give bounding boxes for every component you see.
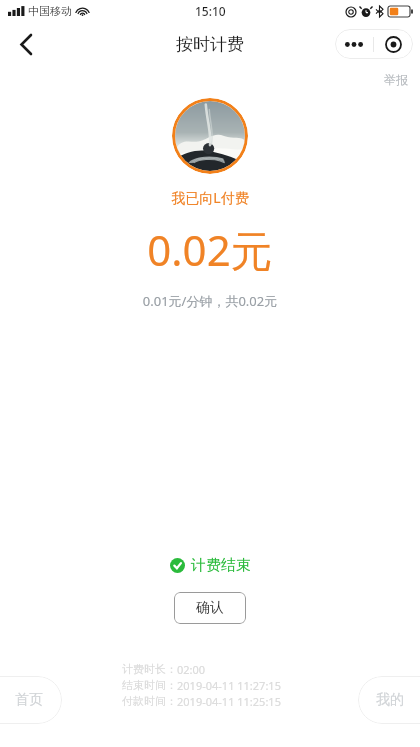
button[interactable]: Avatar <box>172 98 248 174</box>
button[interactable]: 首页 <box>0 676 62 724</box>
staticText: 0.01元/分钟，共0.02元 <box>0 292 420 310</box>
button[interactable]: 举报 <box>384 72 408 87</box>
button[interactable]: 确认 <box>174 592 246 624</box>
staticText: 首页 <box>15 691 43 709</box>
button[interactable]: Back <box>6 25 44 63</box>
staticText: 我的 <box>376 691 404 709</box>
staticText: 结束时间： <box>122 678 177 692</box>
staticText: 15:10 <box>195 3 226 19</box>
staticText: 2019-04-11 11:27:15 <box>177 678 281 693</box>
staticText: 举报 <box>384 72 408 87</box>
button[interactable]: More <box>335 29 373 59</box>
staticText: 2019-04-11 11:25:15 <box>177 694 281 709</box>
staticText: 我已向L付费 <box>0 188 420 207</box>
staticText: 0.02元 <box>0 221 420 278</box>
staticText: 付款时间： <box>122 694 177 708</box>
button[interactable]: Close <box>374 29 413 59</box>
staticText: 计费时长： <box>122 662 177 676</box>
button[interactable]: 我的 <box>358 676 420 724</box>
staticText: 计费结束 <box>191 556 251 575</box>
staticText: 确认 <box>196 599 224 617</box>
staticText: 按时计费 <box>176 34 244 55</box>
staticText: 中国移动 <box>28 4 72 18</box>
staticText: 02:00 <box>177 662 206 677</box>
